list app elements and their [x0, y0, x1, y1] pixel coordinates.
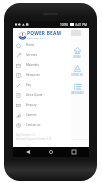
button[interactable]: Enquiry	[13, 100, 71, 110]
staticText: Get a Quote	[26, 93, 43, 97]
button[interactable]: Home	[13, 40, 71, 50]
staticText: SERVICES	[71, 73, 83, 77]
button[interactable]: HOME	[68, 44, 86, 62]
staticText: Careers	[26, 113, 37, 117]
button[interactable]: Services	[13, 50, 71, 60]
staticText: Resources	[26, 73, 40, 77]
button[interactable]: Recent apps	[66, 147, 82, 157]
button[interactable]: SERVICES	[68, 62, 86, 80]
staticText: Android Support Version 4.15	[16, 137, 52, 141]
button[interactable]: Contact us	[13, 120, 71, 130]
staticText: Enquiry	[26, 103, 37, 107]
staticText: Materials	[26, 63, 39, 67]
button[interactable]: Get a Quote	[13, 90, 71, 100]
button[interactable]: Home	[43, 147, 59, 157]
staticText: 4:41 PM	[75, 23, 87, 27]
staticText: Faq	[26, 83, 31, 87]
staticText: App Version 1.1	[16, 133, 35, 137]
button[interactable]: Faq	[13, 80, 71, 90]
button[interactable]: Back	[20, 147, 36, 157]
button[interactable]: Resources	[13, 70, 71, 80]
staticText: Contact us	[26, 123, 41, 127]
button[interactable]: Careers	[13, 110, 71, 120]
staticText: HOME	[73, 55, 81, 59]
staticText: Home	[26, 43, 35, 47]
button[interactable]: Materials	[13, 60, 71, 70]
staticText: Services	[26, 53, 38, 57]
staticText: MATERIALS	[70, 91, 84, 95]
staticText: 100%	[60, 23, 69, 27]
button[interactable]: MATERIALS	[68, 80, 86, 98]
staticText: POWER BEAM	[27, 30, 62, 37]
staticText: T E C H N O L O G Y	[27, 37, 45, 40]
